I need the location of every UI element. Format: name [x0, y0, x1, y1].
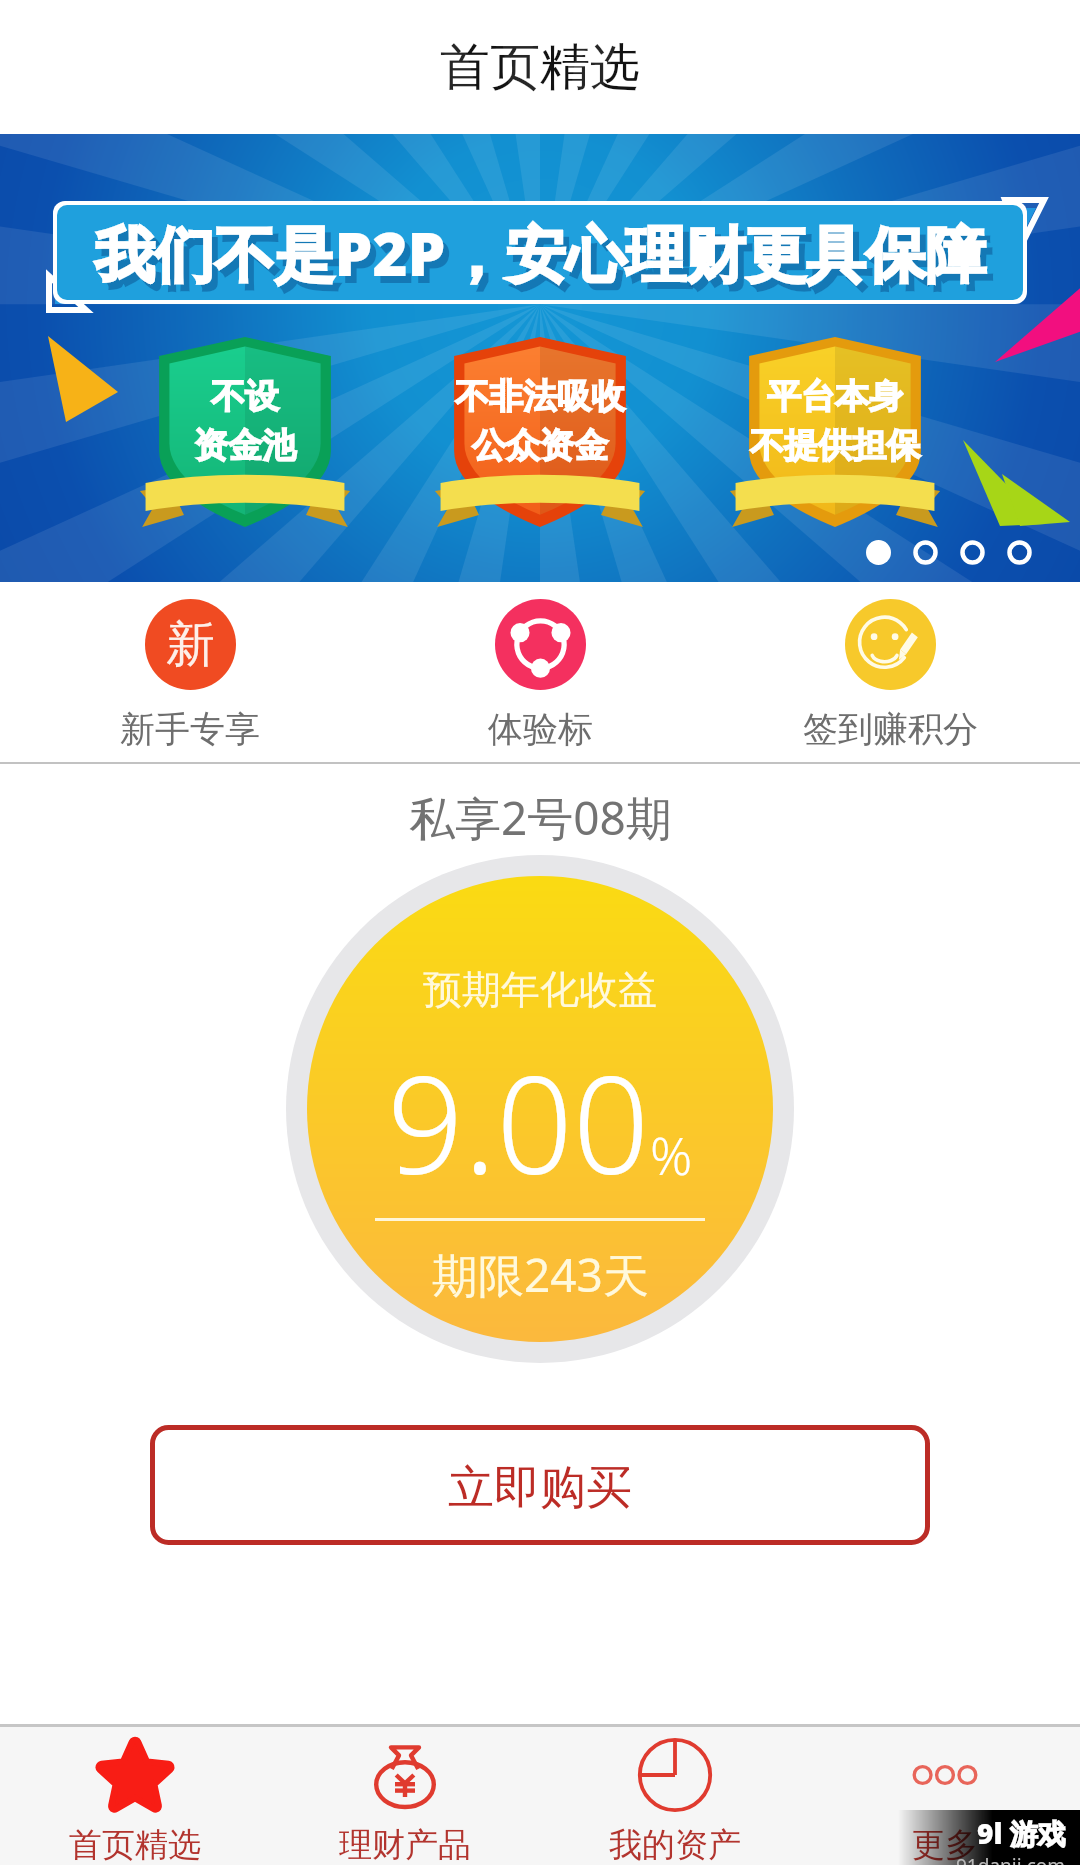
staticText: 理财产品 — [339, 1824, 471, 1865]
button[interactable]: 第1页 — [866, 540, 891, 565]
staticText: 立即购买 — [448, 1459, 632, 1517]
button[interactable]: 更多 — [810, 1727, 1080, 1865]
button[interactable]: 体验标 — [365, 582, 715, 762]
staticText: 资金池 — [194, 424, 296, 467]
staticText: 不设 — [211, 375, 279, 418]
button[interactable]: 第3页 — [960, 540, 985, 565]
button[interactable]: 签到赚积分 — [715, 582, 1065, 762]
staticText: 不提供担保 — [750, 424, 920, 467]
staticText: 首页精选 — [69, 1824, 201, 1865]
staticText: 更多 — [912, 1824, 978, 1865]
staticText: 新手专享 — [120, 707, 260, 751]
staticText: 公众资金 — [472, 424, 608, 467]
button[interactable]: 新 — [15, 582, 365, 762]
staticText: 我的资产 — [609, 1824, 741, 1865]
button[interactable]: 我的资产 — [540, 1727, 810, 1865]
button[interactable]: 第2页 — [913, 540, 938, 565]
button[interactable]: 促销横幅：我们不是P2P，安心理财更具保障 — [0, 134, 1080, 582]
staticText: 预期年化收益 — [423, 965, 657, 1014]
staticText: 9l 游戏 — [977, 1814, 1066, 1852]
staticText: 体验标 — [488, 707, 593, 751]
staticText: 新 — [166, 614, 215, 676]
staticText: 平台本身 — [767, 375, 903, 418]
staticText: 签到赚积分 — [803, 707, 978, 751]
staticText: 9.00 — [387, 1031, 650, 1214]
button[interactable]: 理财产品 — [270, 1727, 540, 1865]
button[interactable]: 首页精选 — [0, 1727, 270, 1865]
staticText: 期限243天 — [432, 1243, 649, 1306]
button[interactable]: 立即购买 — [150, 1425, 930, 1545]
staticText: 不非法吸收 — [455, 375, 625, 418]
button[interactable]: 第4页 — [1007, 540, 1032, 565]
staticText: 91danji.com — [956, 1853, 1066, 1865]
staticText: 私享2号08期 — [409, 786, 672, 849]
staticText: 首页精选 — [440, 36, 640, 99]
staticText: % — [650, 1119, 693, 1190]
